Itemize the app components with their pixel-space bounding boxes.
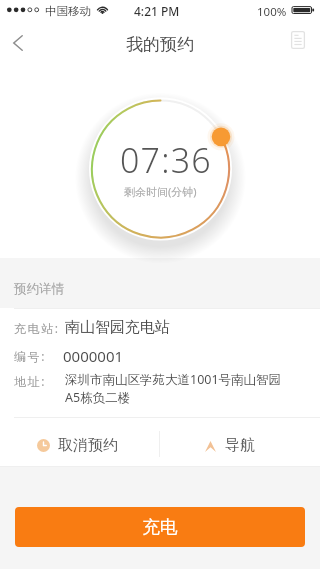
staticText: 0000001 (63, 346, 124, 366)
button[interactable]: 导航 (160, 418, 320, 467)
staticText: 深圳市南山区学苑大道1001号南山智园A5栋负二楼 (65, 371, 293, 406)
staticText: 4:21 PM (134, 3, 180, 19)
button[interactable]: 充电 (15, 507, 305, 547)
staticText: 取消预约 (58, 436, 118, 455)
staticText: 充电 (142, 516, 178, 539)
staticText: 导航 (225, 436, 255, 455)
staticText: 充电站: (14, 320, 60, 336)
button[interactable]: Order list (283, 29, 313, 59)
staticText: 编号: (14, 348, 47, 364)
staticText: 我的预约 (126, 34, 194, 55)
button[interactable]: Back (1, 27, 35, 61)
staticText: 100% (257, 4, 287, 20)
staticText: 剩余时间(分钟) (124, 184, 197, 199)
staticText: 07:36 (120, 137, 212, 183)
staticText: 地址: (14, 373, 47, 389)
button[interactable]: 取消预约 (0, 418, 160, 467)
staticText: 中国移动 (45, 4, 91, 18)
staticText: 预约详情 (14, 281, 64, 297)
staticText: 南山智园充电站 (65, 318, 170, 337)
